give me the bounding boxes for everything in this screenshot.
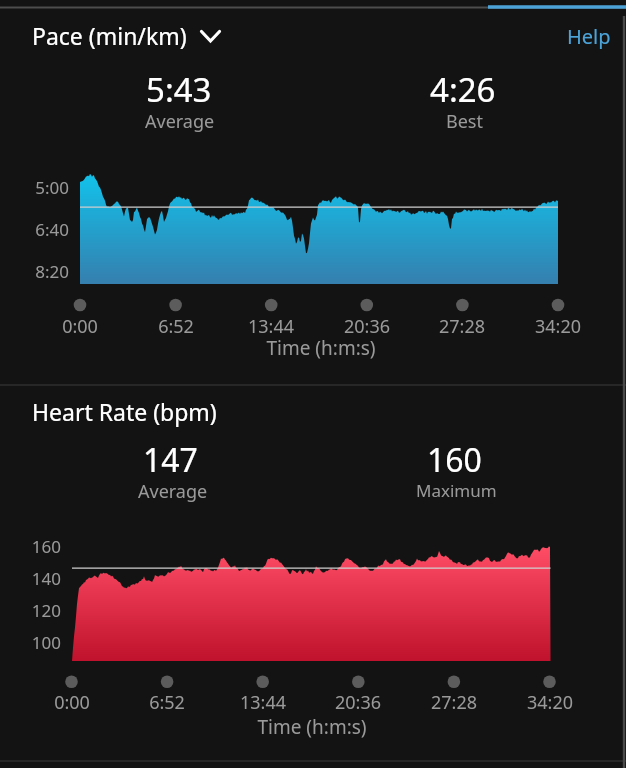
staticText: 27:28: [294, 690, 614, 715]
staticText: Time (h:m:s): [152, 714, 472, 740]
staticText: 8:20: [0, 260, 69, 283]
staticText: Heart Rate (bpm): [32, 396, 217, 427]
staticText: 147: [143, 438, 198, 482]
button[interactable]: Help: [556, 16, 614, 56]
staticText: 13:44: [111, 314, 431, 339]
staticText: Pace (min/km): [32, 20, 187, 51]
staticText: 6:52: [16, 314, 336, 339]
staticText: 160: [427, 438, 482, 482]
staticText: 27:28: [302, 314, 622, 339]
staticText: 5:00: [0, 176, 69, 199]
staticText: 13:44: [103, 690, 423, 715]
staticText: Average: [138, 479, 208, 504]
staticText: Maximum: [416, 479, 497, 502]
staticText: 20:36: [198, 690, 518, 715]
button[interactable]: Pace metric selector: [24, 16, 230, 56]
staticText: Help: [567, 23, 611, 50]
staticText: Average: [145, 109, 215, 134]
staticText: 34:20: [398, 314, 626, 339]
staticText: Best: [446, 109, 483, 134]
staticText: 0:00: [0, 690, 232, 715]
staticText: 100: [0, 631, 61, 654]
staticText: 6:40: [0, 218, 69, 241]
staticText: 0:00: [0, 314, 240, 339]
staticText: 5:43: [146, 67, 212, 112]
staticText: 4:26: [430, 67, 496, 112]
staticText: 120: [0, 599, 61, 622]
staticText: 34:20: [390, 690, 626, 715]
staticText: 6:52: [7, 690, 327, 715]
staticText: 160: [0, 535, 61, 558]
staticText: 140: [0, 567, 61, 590]
staticText: Time (h:m:s): [161, 335, 481, 361]
staticText: 20:36: [207, 314, 527, 339]
